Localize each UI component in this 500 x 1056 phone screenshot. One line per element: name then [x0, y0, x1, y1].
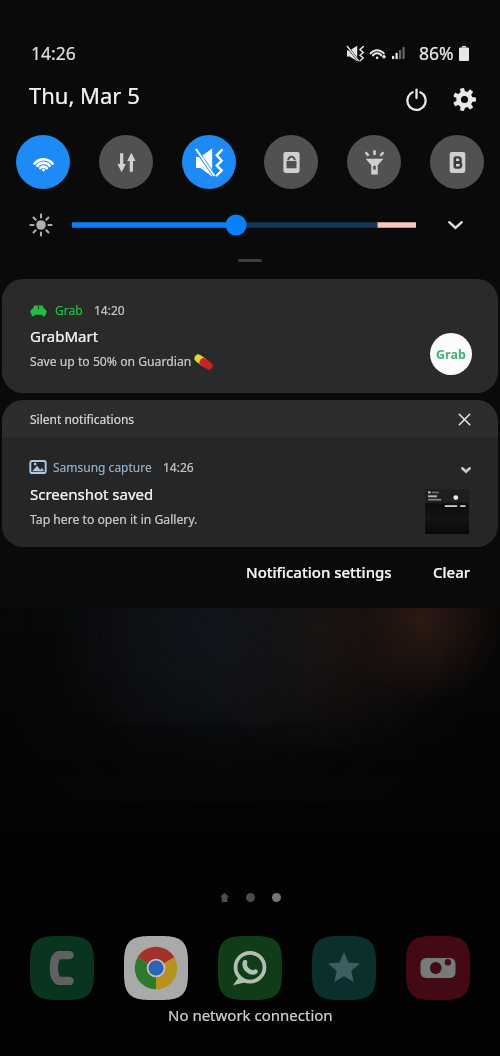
- staticText: Save up to 50% on Guardian: [30, 353, 192, 370]
- button[interactable]: Bixby: [430, 135, 484, 189]
- staticText: No network connection: [168, 1005, 333, 1025]
- staticText: Tap here to open it in Gallery.: [30, 511, 198, 528]
- button[interactable]: Camera: [406, 936, 470, 1000]
- staticText: GrabMart: [30, 326, 99, 346]
- button[interactable]: Mobile data: [99, 135, 153, 189]
- button[interactable]: Notification settings: [240, 553, 398, 591]
- staticText: 14:20: [94, 302, 125, 318]
- staticText: Screenshot saved: [30, 484, 154, 504]
- button[interactable]: [219, 892, 230, 903]
- staticText: 14:26: [31, 41, 76, 65]
- button[interactable]: WhatsApp: [218, 936, 282, 1000]
- staticText: Samsung capture: [53, 459, 152, 475]
- staticText: Silent notifications: [30, 411, 135, 427]
- staticText: Thu, Mar 5: [29, 80, 140, 110]
- staticText: Notification settings: [246, 562, 392, 582]
- button[interactable]: Samsung Internet: [312, 936, 376, 1000]
- button[interactable]: Expand quick settings: [438, 208, 472, 242]
- staticText: 14:26: [163, 459, 194, 475]
- staticText: Grab: [55, 302, 83, 318]
- button[interactable]: Power: [396, 79, 436, 119]
- button[interactable]: Phone: [30, 936, 94, 1000]
- staticText: 86%: [419, 41, 454, 65]
- button[interactable]: Sound off: [182, 135, 236, 189]
- button[interactable]: Screen rotation locked: [264, 135, 318, 189]
- button[interactable]: [72, 212, 416, 238]
- button[interactable]: Expand notification: [453, 457, 479, 483]
- button[interactable]: Chrome: [124, 936, 188, 1000]
- button[interactable]: Settings: [444, 79, 484, 119]
- button[interactable]: Wi-Fi: [16, 135, 70, 189]
- button[interactable]: Clear: [427, 553, 477, 591]
- staticText: Grab: [436, 346, 466, 363]
- button[interactable]: [271, 892, 282, 903]
- staticText: Clear: [433, 562, 471, 582]
- button[interactable]: [245, 892, 256, 903]
- button[interactable]: Flashlight: [347, 135, 401, 189]
- button[interactable]: Grab: [2, 279, 498, 393]
- button[interactable]: Dismiss silent notifications: [450, 405, 478, 433]
- button[interactable]: Samsung capture: [2, 437, 498, 547]
